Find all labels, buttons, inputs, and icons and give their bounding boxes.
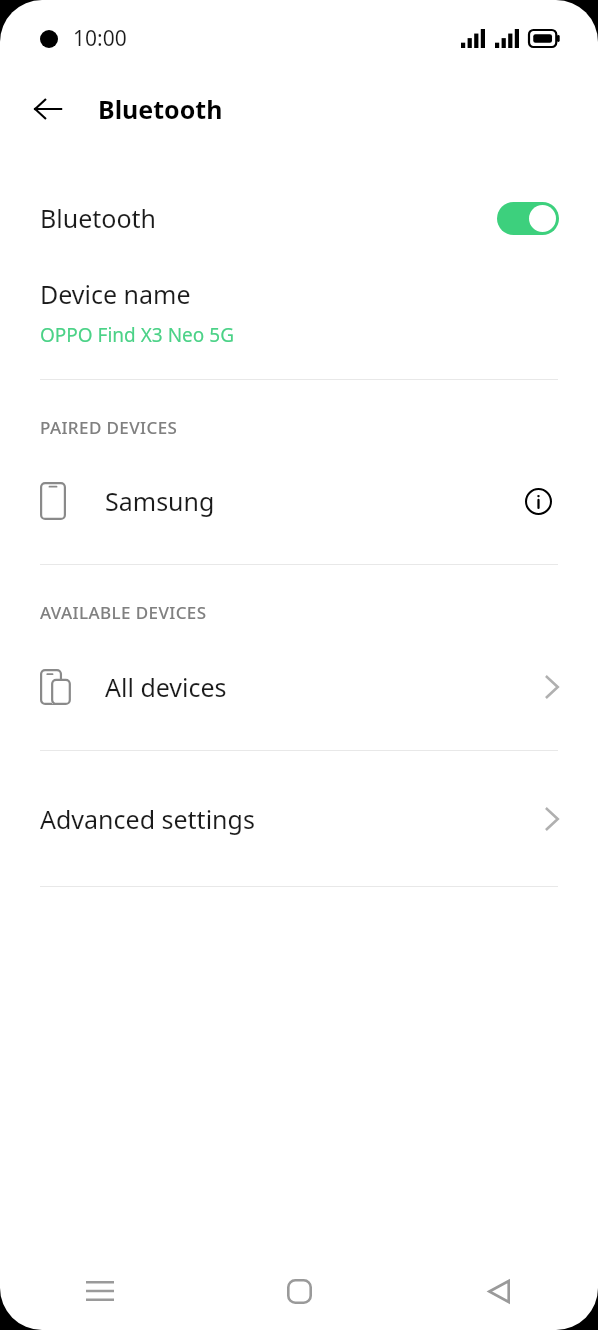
button[interactable]: Bluetooth — [0, 192, 598, 244]
staticText: OPPO Find X3 Neo 5G — [40, 322, 234, 348]
staticText: Bluetooth — [98, 92, 223, 126]
button[interactable]: All devices — [0, 661, 598, 713]
button[interactable]: Advanced settings — [0, 797, 598, 841]
button[interactable]: Home — [200, 1252, 399, 1330]
staticText: Device name — [40, 277, 191, 311]
staticText: All devices — [105, 670, 544, 704]
button[interactable]: Bluetooth toggle on — [497, 202, 559, 235]
button[interactable]: Recent apps — [0, 1252, 200, 1330]
button[interactable]: Device info — [516, 479, 560, 523]
button[interactable]: Samsung — [0, 475, 598, 527]
button[interactable]: Back — [399, 1252, 598, 1330]
staticText: Samsung — [105, 484, 516, 518]
button[interactable]: Back — [22, 83, 74, 135]
staticText: Bluetooth — [40, 201, 497, 235]
staticText: AVAILABLE DEVICES — [40, 601, 207, 624]
staticText: PAIRED DEVICES — [40, 416, 178, 439]
staticText: Advanced settings — [40, 802, 544, 836]
staticText: 10:00 — [73, 24, 127, 53]
button[interactable]: Device name — [0, 277, 598, 348]
